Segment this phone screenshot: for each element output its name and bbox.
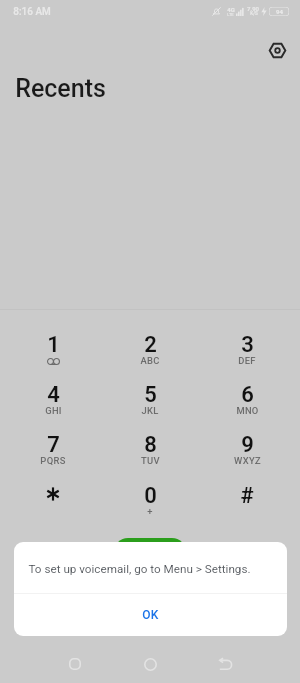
button[interactable]: Settings: [262, 35, 292, 65]
staticText: Recents: [15, 74, 106, 103]
staticText: 2: [144, 332, 157, 358]
button[interactable]: #: [199, 474, 295, 523]
button[interactable]: 8: [102, 423, 198, 472]
staticText: MNO: [236, 405, 259, 416]
button[interactable]: Recents: [59, 648, 91, 680]
staticText: 4: [47, 382, 60, 408]
button[interactable]: OK: [14, 594, 287, 635]
staticText: GHI: [45, 405, 62, 416]
staticText: WXYZ: [234, 455, 261, 466]
staticText: ABC: [140, 355, 160, 366]
button[interactable]: 0: [102, 474, 198, 523]
staticText: 7: [47, 432, 60, 458]
staticText: DEF: [238, 355, 256, 366]
button[interactable]: [5, 474, 101, 523]
button[interactable]: Back: [209, 648, 241, 680]
staticText: 7.90: [247, 5, 259, 12]
staticText: 9: [241, 432, 254, 458]
staticText: To set up voicemail, go to Menu > Settin…: [28, 562, 251, 576]
staticText: 5: [144, 382, 157, 408]
button[interactable]: 2: [102, 323, 198, 372]
staticText: 8:16 AM: [13, 6, 51, 18]
button[interactable]: 6: [199, 373, 295, 422]
staticText: +: [147, 506, 153, 517]
staticText: 1: [47, 332, 60, 358]
button[interactable]: 1: [5, 323, 101, 372]
button[interactable]: Call: [114, 538, 186, 582]
button[interactable]: Home: [134, 648, 166, 680]
staticText: OK: [142, 608, 159, 622]
staticText: 8: [144, 432, 157, 458]
staticText: K/S: [250, 11, 258, 16]
staticText: LTE: [227, 12, 234, 17]
staticText: JKL: [141, 405, 159, 416]
staticText: #: [240, 483, 254, 509]
staticText: 0: [144, 483, 157, 509]
staticText: 3: [241, 332, 254, 358]
staticText: TUV: [141, 455, 160, 466]
button[interactable]: 9: [199, 423, 295, 472]
button[interactable]: 5: [102, 373, 198, 422]
button[interactable]: 4: [5, 373, 101, 422]
staticText: 6: [241, 382, 254, 408]
button[interactable]: 7: [5, 423, 101, 472]
staticText: PQRS: [40, 455, 66, 466]
staticText: 4G: [227, 6, 235, 13]
button[interactable]: 3: [199, 323, 295, 372]
staticText: 94: [276, 8, 283, 15]
